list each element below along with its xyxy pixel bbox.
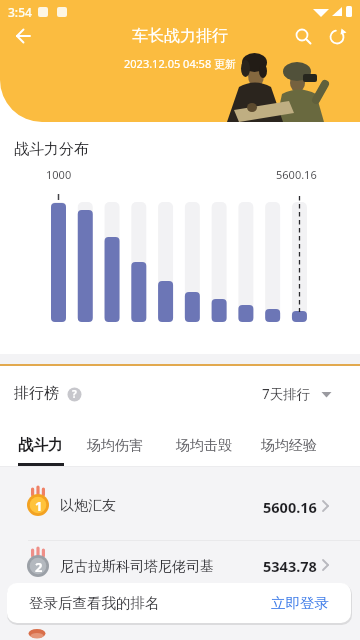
staticText: 战斗力分布 <box>14 140 89 159</box>
staticText: 2 <box>35 558 43 576</box>
staticText: 场均击毁 <box>176 437 232 455</box>
staticText: 5600.16 <box>263 497 317 515</box>
button[interactable]: 7天排行 <box>262 384 333 404</box>
staticText: 2023.12.05 04:58 更新 <box>124 56 237 71</box>
staticText: 5343.78 <box>263 556 317 574</box>
button[interactable] <box>326 24 350 48</box>
staticText: 7天排行 <box>262 385 311 403</box>
staticText: ? <box>72 387 77 401</box>
button[interactable]: 战斗力 <box>18 436 63 455</box>
button[interactable] <box>8 24 40 56</box>
staticText: 立即登录 <box>271 594 329 612</box>
staticText: 5600.16 <box>276 167 317 182</box>
staticText: 1 <box>35 497 43 515</box>
button[interactable]: 立即登录 <box>271 594 329 612</box>
staticText: 登录后查看我的排名 <box>29 594 160 612</box>
staticText: 排行榜 <box>14 384 59 403</box>
button[interactable]: 登录后查看我的排名 <box>7 583 351 623</box>
button[interactable]: 场均经验 <box>261 437 317 455</box>
staticText: 尼古拉斯科司塔尼佬司基 <box>60 558 214 576</box>
button[interactable] <box>67 387 82 402</box>
staticText: 场均伤害 <box>87 437 143 455</box>
staticText: 车长战力排行 <box>132 26 228 46</box>
staticText: 3:54 <box>8 4 32 20</box>
staticText: 场均经验 <box>261 437 317 455</box>
button[interactable]: 场均击毁 <box>176 437 232 455</box>
button[interactable] <box>292 24 316 48</box>
button[interactable] <box>0 472 360 540</box>
button[interactable] <box>0 541 360 603</box>
button[interactable]: 场均伤害 <box>87 437 143 455</box>
staticText: 以炮汇友 <box>60 497 116 515</box>
staticText: 战斗力 <box>18 436 63 455</box>
staticText: 1000 <box>46 167 72 182</box>
